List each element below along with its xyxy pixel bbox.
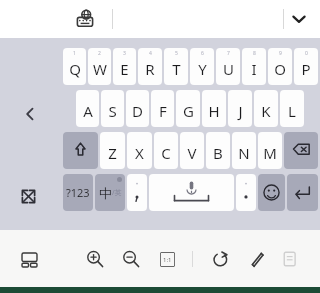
button[interactable]: Emoji — [258, 174, 285, 211]
staticText: C — [161, 143, 171, 163]
staticText: /英 — [112, 188, 122, 198]
button[interactable]: 3 — [113, 48, 136, 85]
staticText: 2 — [98, 50, 101, 57]
button[interactable]: Period — [236, 174, 256, 211]
staticText: ?123 — [66, 185, 90, 200]
button[interactable]: 8 — [242, 48, 266, 85]
button[interactable]: 0 — [294, 48, 318, 85]
staticText: 4 — [149, 50, 152, 57]
button[interactable]: D — [126, 90, 149, 127]
button[interactable]: Hide keyboard — [286, 6, 312, 32]
staticText: I — [251, 59, 257, 79]
staticText: J — [238, 101, 243, 121]
button[interactable]: H — [202, 90, 226, 127]
staticText: 5 — [175, 50, 178, 57]
button[interactable]: Document — [275, 244, 305, 274]
button[interactable]: Rotate — [205, 244, 235, 274]
staticText: 3 — [123, 50, 126, 57]
button[interactable]: C — [154, 132, 178, 169]
staticText: E — [120, 59, 129, 79]
staticText: Q — [69, 59, 81, 79]
button[interactable]: A — [76, 90, 99, 127]
button[interactable]: X — [127, 132, 152, 169]
button[interactable]: 9 — [268, 48, 292, 85]
staticText: O — [274, 59, 286, 79]
staticText: Z — [108, 143, 117, 163]
button[interactable]: Actual size — [152, 244, 182, 274]
staticText: A — [83, 101, 93, 121]
staticText: X — [135, 143, 144, 163]
button[interactable]: J — [228, 90, 252, 127]
staticText: L — [288, 101, 296, 121]
staticText: 0 — [305, 50, 308, 57]
button[interactable]: 5 — [164, 48, 188, 85]
button[interactable]: B — [206, 132, 230, 169]
button[interactable]: ?123 — [63, 174, 93, 211]
button[interactable]: 2 — [88, 48, 111, 85]
button[interactable]: K — [254, 90, 278, 127]
button[interactable]: 中 — [95, 174, 125, 211]
staticText: F — [159, 101, 167, 121]
staticText: W — [93, 59, 107, 79]
button[interactable]: Comma — [127, 174, 147, 211]
staticText: T — [172, 59, 181, 79]
button[interactable]: G — [176, 90, 200, 127]
button[interactable]: 7 — [216, 48, 240, 85]
staticText: N — [238, 143, 250, 163]
button[interactable]: Zoom out — [116, 244, 146, 274]
button[interactable]: S — [101, 90, 124, 127]
staticText: 中 — [99, 185, 112, 201]
button[interactable]: Space — [149, 174, 234, 211]
staticText: 6 — [201, 50, 204, 57]
staticText: M — [263, 143, 277, 163]
button[interactable]: L — [280, 90, 304, 127]
staticText: P — [301, 59, 311, 79]
staticText: K — [261, 101, 271, 121]
button[interactable]: 4 — [138, 48, 162, 85]
staticText: S — [108, 101, 117, 121]
button[interactable]: 1 — [63, 48, 86, 85]
staticText: V — [187, 143, 197, 163]
button[interactable]: F — [151, 90, 174, 127]
staticText: 1:1 — [163, 256, 172, 264]
button[interactable]: M — [258, 132, 282, 169]
button[interactable]: Z — [100, 132, 125, 169]
button[interactable]: Page layout — [14, 244, 44, 274]
staticText: Y — [198, 59, 207, 79]
button[interactable]: Resize keyboard — [14, 182, 42, 210]
button[interactable]: Shift — [63, 132, 98, 169]
staticText: 9 — [279, 50, 282, 57]
staticText: U — [223, 59, 234, 79]
staticText: 7 — [227, 50, 230, 57]
button[interactable]: Zoom in — [80, 244, 110, 274]
staticText: H — [208, 101, 220, 121]
button[interactable]: N — [232, 132, 256, 169]
staticText: 8 — [253, 50, 256, 57]
button[interactable]: V — [180, 132, 204, 169]
button[interactable]: Edit — [241, 244, 271, 274]
staticText: B — [213, 143, 223, 163]
staticText: R — [145, 59, 155, 79]
button[interactable]: Backspace — [284, 132, 318, 169]
staticText: D — [132, 101, 143, 121]
button[interactable]: 6 — [190, 48, 214, 85]
button[interactable]: Back — [18, 102, 42, 126]
button[interactable]: Enter — [287, 174, 318, 211]
button[interactable]: Switch input language — [72, 6, 98, 32]
